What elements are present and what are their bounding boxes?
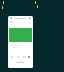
button[interactable] [8, 16, 33, 68]
